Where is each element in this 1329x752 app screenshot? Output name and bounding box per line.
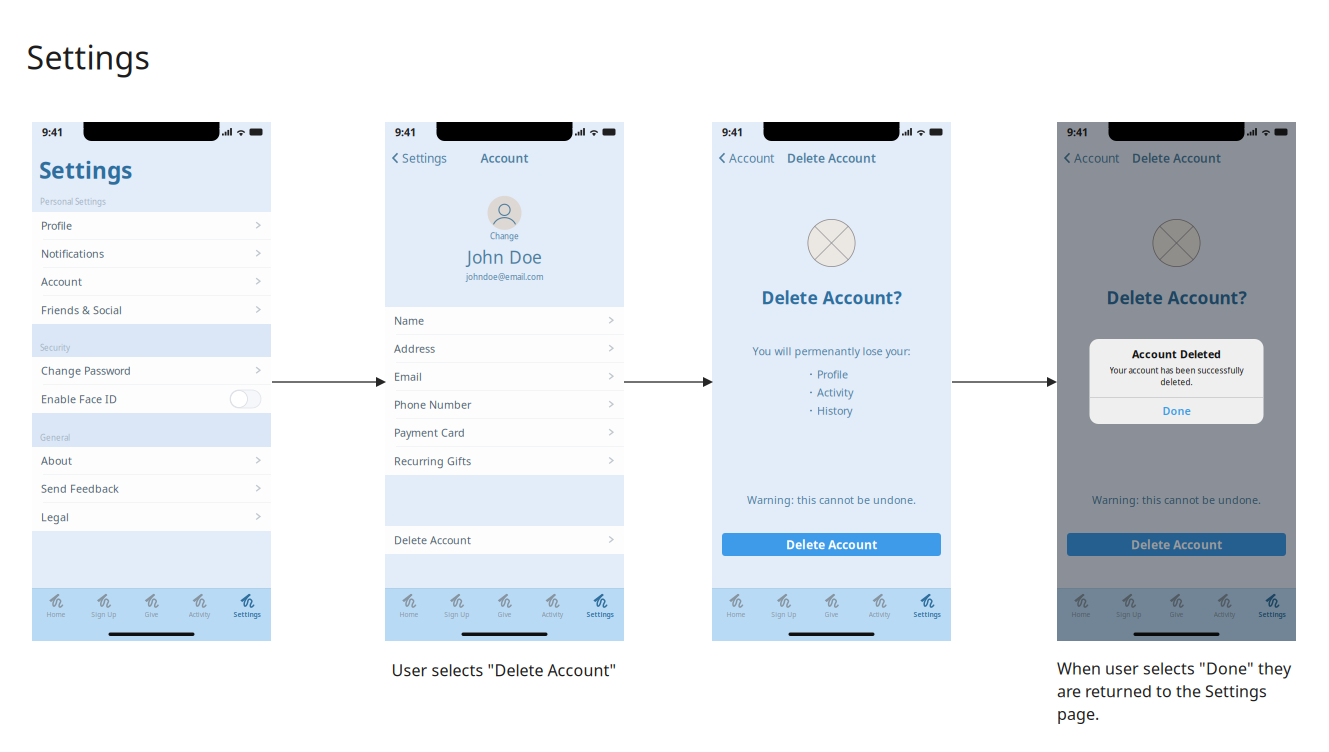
staticText: History bbox=[1162, 403, 1197, 418]
staticText: Account bbox=[729, 150, 774, 166]
button[interactable]: Activity bbox=[1200, 591, 1248, 621]
staticText: Change Password bbox=[41, 364, 131, 378]
staticText: Warning: this cannot be undone. bbox=[747, 493, 916, 507]
button[interactable]: Email bbox=[385, 363, 624, 391]
staticText: Name bbox=[394, 314, 424, 328]
button[interactable]: Sign Up bbox=[1105, 591, 1153, 621]
button[interactable]: Settings bbox=[1248, 591, 1296, 621]
staticText: Profile bbox=[41, 219, 72, 233]
staticText: Personal Settings bbox=[40, 196, 106, 207]
staticText: You will permenantly lose your: bbox=[752, 344, 910, 358]
staticText: Give bbox=[497, 610, 511, 619]
button[interactable]: Delete Account bbox=[1067, 533, 1286, 556]
button[interactable]: Activity bbox=[175, 591, 223, 621]
button[interactable]: Done bbox=[1089, 398, 1263, 424]
staticText: You will permenantly lose your: bbox=[1097, 344, 1255, 358]
button[interactable]: Address bbox=[385, 335, 624, 363]
staticText: Send Feedback bbox=[41, 482, 119, 496]
button[interactable]: Friends & Social bbox=[32, 296, 271, 324]
staticText: Activity bbox=[869, 610, 890, 619]
staticText: Email bbox=[394, 370, 422, 384]
staticText: Friends & Social bbox=[41, 303, 122, 317]
staticText: Recurring Gifts bbox=[394, 454, 471, 468]
button[interactable]: Home bbox=[32, 591, 80, 621]
button[interactable]: Settings bbox=[223, 591, 271, 621]
button[interactable]: Account bbox=[712, 147, 781, 169]
staticText: When user selects "Done" they bbox=[1057, 658, 1291, 679]
button[interactable]: Home bbox=[385, 591, 433, 621]
staticText: Activity bbox=[1162, 385, 1198, 399]
staticText: Profile bbox=[817, 367, 848, 381]
button[interactable]: Sign Up bbox=[760, 591, 808, 621]
staticText: John Doe bbox=[467, 245, 542, 268]
button[interactable]: Give bbox=[808, 591, 855, 621]
staticText: Activity bbox=[542, 610, 563, 619]
button[interactable]: Phone Number bbox=[385, 391, 624, 419]
staticText: History bbox=[817, 403, 852, 418]
staticText: 9:41 bbox=[722, 125, 743, 139]
staticText: Delete Account? bbox=[761, 286, 901, 309]
button[interactable]: Activity bbox=[528, 591, 576, 621]
button[interactable]: Give bbox=[128, 591, 175, 621]
button[interactable]: Delete Account bbox=[385, 526, 624, 554]
staticText: Account Deleted bbox=[1132, 347, 1221, 361]
staticText: Change bbox=[490, 231, 519, 241]
staticText: Settings bbox=[26, 36, 149, 78]
button[interactable]: Home bbox=[1057, 591, 1105, 621]
button[interactable]: Change bbox=[487, 196, 521, 241]
staticText: Account bbox=[41, 275, 82, 289]
button[interactable]: Enable Face ID bbox=[230, 390, 261, 408]
staticText: Done bbox=[1162, 404, 1190, 418]
button[interactable]: Activity bbox=[855, 591, 903, 621]
staticText: Account bbox=[480, 150, 528, 166]
staticText: Delete Account bbox=[1131, 536, 1222, 552]
button[interactable]: Payment Card bbox=[385, 419, 624, 447]
staticText: Phone Number bbox=[394, 398, 471, 412]
staticText: Legal bbox=[41, 510, 69, 524]
staticText: 9:41 bbox=[42, 125, 63, 139]
staticText: are returned to the Settings bbox=[1057, 680, 1267, 702]
button[interactable]: Give bbox=[1153, 591, 1200, 621]
staticText: Account bbox=[1074, 150, 1119, 166]
staticText: Settings bbox=[234, 610, 261, 619]
button[interactable]: Enable Face ID bbox=[32, 385, 271, 413]
staticText: Sign Up bbox=[1116, 610, 1141, 619]
button[interactable]: Delete Account bbox=[722, 533, 941, 556]
staticText: Delete Account bbox=[787, 150, 876, 166]
button[interactable]: Sign Up bbox=[433, 591, 481, 621]
button[interactable]: Change Password bbox=[32, 357, 271, 385]
staticText: Delete Account bbox=[1132, 150, 1221, 166]
button[interactable]: Account bbox=[1057, 147, 1126, 169]
button[interactable]: Give bbox=[481, 591, 528, 621]
button[interactable]: Settings bbox=[576, 591, 624, 621]
button[interactable]: Profile bbox=[32, 212, 271, 240]
staticText: Give bbox=[1169, 610, 1183, 619]
staticText: deleted. bbox=[1160, 377, 1192, 387]
staticText: Your account has been successfully bbox=[1109, 365, 1243, 376]
staticText: Settings bbox=[39, 155, 132, 185]
staticText: Notifications bbox=[41, 247, 104, 261]
button[interactable]: Recurring Gifts bbox=[385, 447, 624, 475]
staticText: Give bbox=[144, 610, 158, 619]
staticText: Activity bbox=[1214, 610, 1235, 619]
staticText: Sign Up bbox=[444, 610, 469, 619]
staticText: Home bbox=[399, 610, 418, 619]
button[interactable]: Settings bbox=[903, 591, 951, 621]
button[interactable]: Send Feedback bbox=[32, 475, 271, 503]
button[interactable]: Name bbox=[385, 307, 624, 335]
button[interactable]: Legal bbox=[32, 503, 271, 531]
staticText: Home bbox=[1071, 610, 1090, 619]
button[interactable]: Settings bbox=[385, 147, 454, 169]
staticText: 9:41 bbox=[395, 125, 416, 139]
button[interactable]: Home bbox=[712, 591, 760, 621]
staticText: Home bbox=[46, 610, 65, 619]
button[interactable]: Notifications bbox=[32, 240, 271, 268]
staticText: Delete Account bbox=[394, 533, 471, 547]
button[interactable]: Sign Up bbox=[80, 591, 128, 621]
button[interactable]: Account bbox=[32, 268, 271, 296]
staticText: Warning: this cannot be undone. bbox=[1092, 493, 1261, 507]
staticText: Settings bbox=[587, 610, 614, 619]
staticText: Address bbox=[394, 342, 435, 356]
button[interactable]: About bbox=[32, 447, 271, 475]
staticText: Sign Up bbox=[771, 610, 796, 619]
